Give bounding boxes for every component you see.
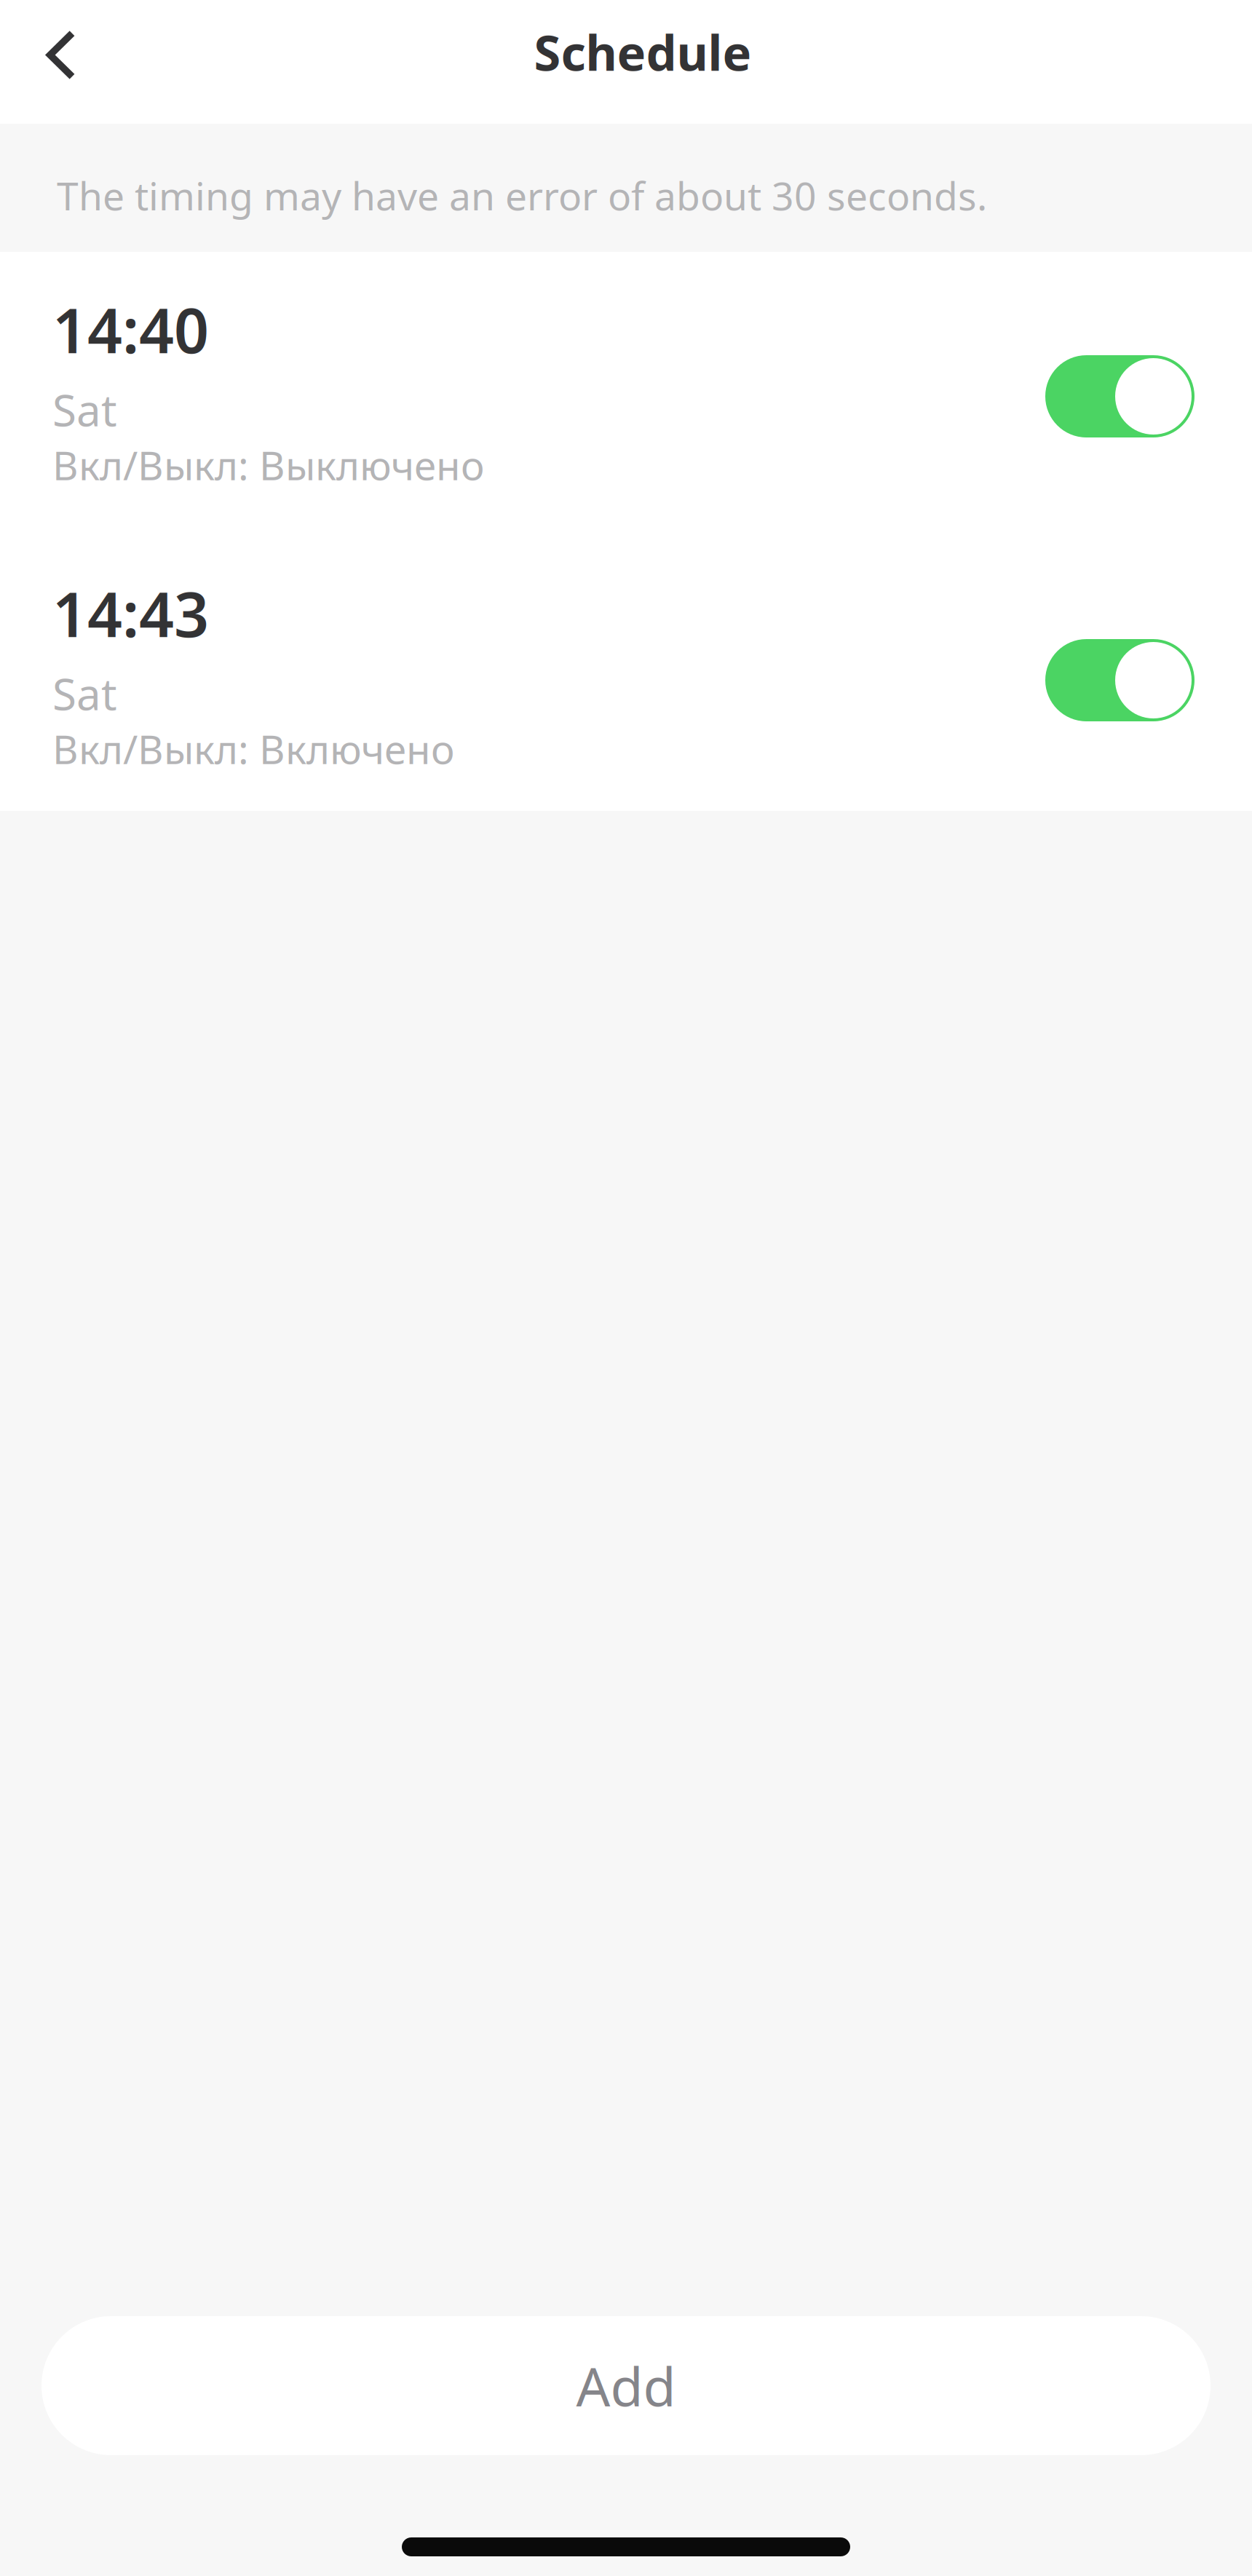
button[interactable]: 14:43	[0, 536, 1252, 811]
staticText: Sat	[52, 664, 117, 722]
staticText: 14:43	[52, 573, 209, 654]
button[interactable]: Toggle alarm 14:43	[1045, 573, 1194, 721]
staticText: Add	[576, 2350, 676, 2421]
staticText: The timing may have an error of about 30…	[57, 170, 987, 221]
button[interactable]: Back	[0, 0, 109, 124]
staticText: Вкл/Выкл: Включено	[52, 722, 454, 775]
button[interactable]: Toggle alarm 14:40	[1045, 289, 1194, 437]
staticText: Вкл/Выкл: Выключено	[52, 438, 484, 491]
staticText: 14:40	[52, 289, 209, 370]
button[interactable]: Add	[41, 2316, 1211, 2455]
staticText: Sat	[52, 380, 117, 438]
button[interactable]: 14:40	[0, 252, 1252, 536]
staticText: Schedule	[534, 20, 752, 84]
